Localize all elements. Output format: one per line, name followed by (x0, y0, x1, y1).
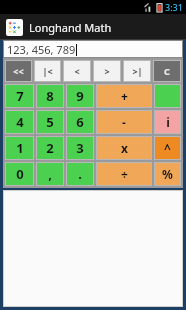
button[interactable]: < (64, 61, 90, 81)
button[interactable]: >| (124, 61, 150, 81)
button[interactable]: ^ (155, 137, 180, 159)
staticText: , (48, 165, 52, 183)
button[interactable]: % (155, 163, 180, 185)
button[interactable]: > (94, 61, 120, 81)
button[interactable]: 9 (67, 85, 93, 107)
staticText: 1 (16, 139, 24, 157)
staticText: 4 (16, 113, 24, 131)
staticText: Longhand Math (29, 20, 112, 35)
staticText: i (166, 114, 170, 130)
staticText: << (13, 65, 24, 77)
staticText: + (121, 88, 128, 104)
staticText: - (122, 114, 126, 130)
button[interactable]: i (155, 111, 180, 133)
staticText: 7 (16, 87, 24, 105)
button[interactable]: C (154, 61, 180, 81)
staticText: 2 (46, 139, 54, 157)
staticText: 3:31 (165, 1, 183, 13)
button[interactable]: |< (35, 61, 60, 81)
button[interactable]: 2 (37, 137, 63, 159)
button[interactable]: , (37, 163, 63, 185)
button[interactable]: . (67, 163, 93, 185)
button[interactable]: 4 (6, 111, 33, 133)
staticText: . (78, 165, 82, 183)
staticText: >| (132, 65, 143, 77)
staticText: ÷ (121, 166, 128, 182)
button[interactable]: 123, 456, 789 (4, 41, 182, 57)
button[interactable]: 1 (6, 137, 33, 159)
staticText: 6 (76, 113, 84, 131)
staticText: 8 (46, 87, 54, 105)
button[interactable]: x (97, 137, 151, 159)
button[interactable]: ÷ (97, 163, 151, 185)
button[interactable]: - (97, 111, 151, 133)
staticText: 123, 456, 789 (7, 42, 76, 57)
button[interactable]: 7 (6, 85, 33, 107)
button[interactable]: + (97, 85, 151, 107)
button[interactable]: 8 (37, 85, 63, 107)
button[interactable]: 0 (6, 163, 33, 185)
button[interactable]: << (6, 61, 31, 81)
staticText: 5 (46, 113, 54, 131)
button[interactable]: 5 (37, 111, 63, 133)
button[interactable]: 6 (67, 111, 93, 133)
staticText: < (74, 65, 80, 77)
staticText: > (104, 65, 110, 77)
staticText: 3 (76, 139, 84, 157)
staticText: 0 (16, 165, 24, 183)
button[interactable]: 3 (67, 137, 93, 159)
staticText: x (121, 140, 128, 156)
staticText: % (162, 166, 173, 182)
staticText: 9 (76, 87, 84, 105)
staticText: C (164, 65, 170, 77)
staticText: |< (42, 65, 53, 77)
staticText: ^ (164, 140, 171, 156)
